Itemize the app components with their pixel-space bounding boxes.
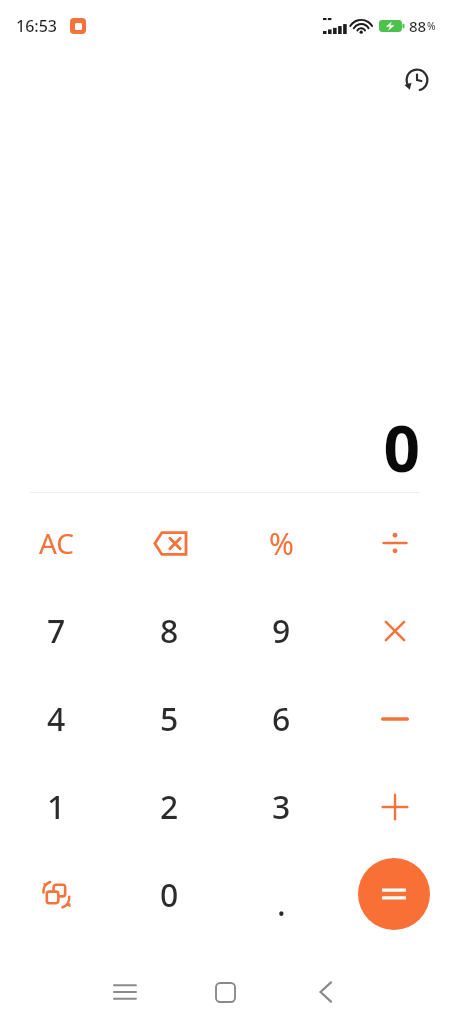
button[interactable]: Equals bbox=[358, 858, 430, 930]
button[interactable]: 5 bbox=[113, 675, 226, 763]
staticText: 4 bbox=[47, 697, 66, 741]
staticText: 88 bbox=[409, 16, 427, 36]
button[interactable]: History bbox=[394, 57, 440, 103]
staticText: 7 bbox=[47, 609, 66, 653]
button[interactable]: AC bbox=[0, 499, 113, 587]
staticText: 3 bbox=[272, 785, 291, 829]
staticText: 16:53 bbox=[16, 15, 57, 37]
button[interactable]: Back bbox=[300, 967, 350, 1017]
button[interactable]: Divide bbox=[338, 499, 450, 587]
staticText: 5 bbox=[160, 697, 179, 741]
button[interactable]: 6 bbox=[225, 675, 338, 763]
staticText: 0 bbox=[383, 404, 420, 488]
staticText: 9 bbox=[272, 609, 291, 653]
staticText: AC bbox=[39, 524, 75, 562]
staticText: . bbox=[277, 882, 286, 926]
button[interactable]: Unit converter bbox=[0, 851, 113, 939]
staticText: 2 bbox=[160, 785, 179, 829]
button[interactable]: Subtract bbox=[338, 675, 450, 763]
button[interactable]: . bbox=[225, 851, 338, 939]
staticText: % bbox=[427, 19, 436, 33]
button[interactable]: 2 bbox=[113, 763, 226, 851]
button[interactable]: 3 bbox=[225, 763, 338, 851]
staticText: % bbox=[269, 523, 294, 564]
button[interactable]: 0 bbox=[113, 851, 226, 939]
button[interactable]: % bbox=[225, 499, 338, 587]
button[interactable]: Add bbox=[338, 763, 450, 851]
button[interactable]: 9 bbox=[225, 587, 338, 675]
staticText: 8 bbox=[160, 609, 179, 653]
button[interactable]: Multiply bbox=[338, 587, 450, 675]
staticText: 6 bbox=[272, 697, 291, 741]
button[interactable]: 8 bbox=[113, 587, 226, 675]
staticText: 1 bbox=[47, 785, 66, 829]
button[interactable]: 7 bbox=[0, 587, 113, 675]
button[interactable]: Recents bbox=[100, 967, 150, 1017]
button[interactable]: 4 bbox=[0, 675, 113, 763]
button[interactable]: 1 bbox=[0, 763, 113, 851]
button[interactable]: Home bbox=[200, 967, 250, 1017]
button[interactable]: Backspace bbox=[113, 499, 226, 587]
staticText: 0 bbox=[160, 873, 179, 917]
